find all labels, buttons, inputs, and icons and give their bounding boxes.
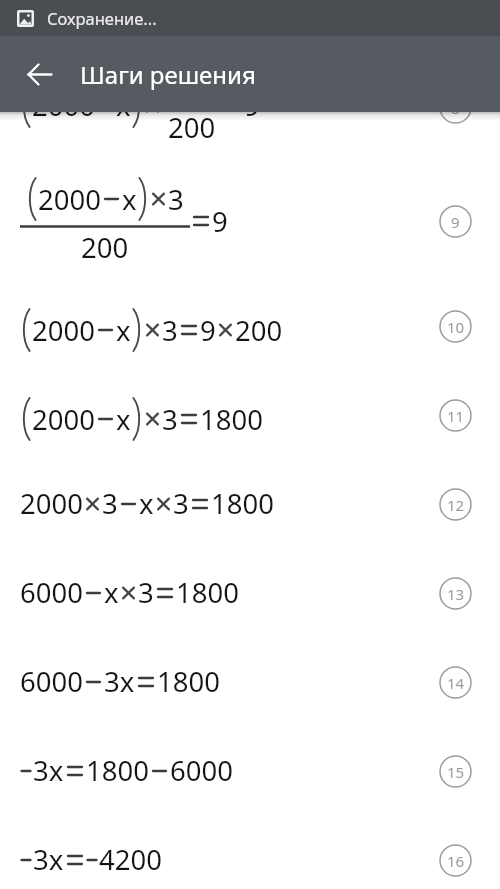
staticText: 2000 [32, 401, 95, 438]
staticText: x [104, 574, 119, 611]
staticText: 14 [447, 673, 465, 693]
staticText: 1800 [200, 401, 263, 438]
button[interactable]: 2000 [20, 396, 263, 442]
staticText: Шаги решения [80, 58, 256, 91]
staticText: 6000 [20, 574, 83, 611]
button[interactable]: 6000 [20, 574, 239, 611]
staticText: 2000 [32, 87, 95, 124]
staticText: x [116, 312, 131, 349]
button[interactable]: 2000 [20, 307, 283, 353]
staticText: 13 [447, 584, 465, 604]
staticText: 1800 [176, 574, 239, 611]
staticText: 3x [33, 841, 64, 878]
staticText: 3x [33, 752, 64, 789]
staticText: 1800 [157, 663, 220, 700]
staticText: 3 [162, 312, 178, 349]
staticText: 8 [451, 98, 460, 118]
staticText: 3x [104, 663, 135, 700]
staticText: 3 [162, 401, 178, 438]
button[interactable]: 3x [20, 841, 162, 878]
staticText: 4200 [99, 841, 162, 878]
button[interactable]: 2000 [20, 176, 228, 266]
staticText: 11 [447, 406, 465, 426]
button[interactable]: 2000 [20, 485, 274, 522]
staticText: Сохранение... [47, 7, 157, 29]
staticText: 9 [244, 87, 260, 124]
button[interactable]: 2000 [20, 65, 260, 146]
staticText: x [116, 401, 131, 438]
button[interactable]: Back [10, 45, 68, 103]
staticText: 3 [138, 574, 154, 611]
staticText: 15 [447, 762, 465, 782]
staticText: 3 [184, 65, 200, 102]
button[interactable]: 6000 [20, 663, 220, 700]
button[interactable]: 3x [20, 752, 233, 789]
staticText: 200 [235, 312, 283, 349]
staticText: 6000 [170, 752, 233, 789]
staticText: 2000 [38, 181, 101, 218]
staticText: 1800 [211, 485, 274, 522]
staticText: 1800 [86, 752, 149, 789]
staticText: 200 [168, 109, 216, 146]
staticText: 16 [447, 851, 465, 871]
staticText: 2000 [20, 485, 83, 522]
staticText: 3 [102, 485, 118, 522]
staticText: 9 [451, 212, 460, 232]
staticText: 9 [200, 312, 216, 349]
staticText: 12 [447, 495, 465, 515]
staticText: 10 [447, 317, 465, 337]
staticText: 6000 [20, 663, 83, 700]
staticText: 9 [212, 203, 228, 240]
staticText: x [116, 87, 131, 124]
staticText: 3 [168, 181, 184, 218]
staticText: x [139, 485, 154, 522]
staticText: 2000 [32, 312, 95, 349]
staticText: 3 [173, 485, 189, 522]
staticText: 200 [81, 229, 129, 266]
staticText: x [122, 181, 137, 218]
